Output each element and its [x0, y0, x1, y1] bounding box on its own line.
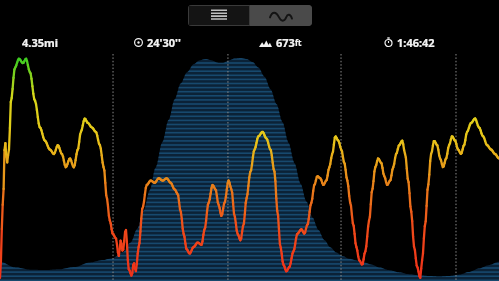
- button[interactable]: 4.35mi: [0, 30, 124, 54]
- staticText: 4.35mi: [22, 35, 58, 50]
- button[interactable]: 1:46:42: [374, 30, 499, 54]
- button[interactable]: 24'30'': [124, 30, 249, 54]
- button[interactable]: List view: [188, 5, 250, 26]
- staticText: 1:46:42: [397, 35, 435, 50]
- button[interactable]: Graph view: [250, 5, 312, 26]
- staticText: 673: [276, 35, 295, 50]
- staticText: ft: [295, 37, 302, 48]
- staticText: 24'30'': [147, 35, 181, 50]
- button[interactable]: 673: [249, 30, 374, 54]
